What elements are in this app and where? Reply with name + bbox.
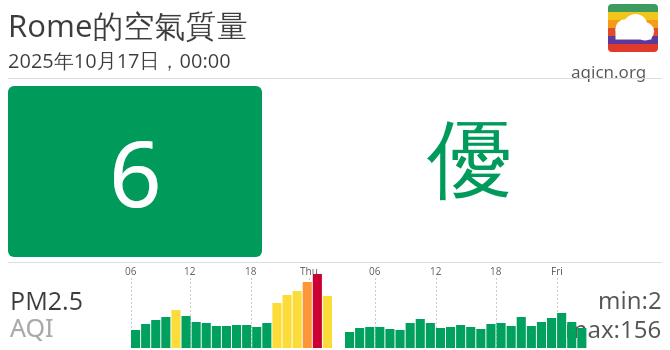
staticText: 12	[430, 264, 442, 278]
button[interactable]: 6	[8, 86, 262, 257]
staticText: 12	[184, 264, 196, 278]
staticText: Fri	[551, 264, 563, 278]
staticText: AQI	[10, 310, 54, 344]
staticText: 2025年10月17日，00:00	[8, 47, 231, 74]
staticText: Thu	[300, 264, 318, 278]
staticText: 18	[245, 264, 257, 278]
staticText: 06	[369, 264, 381, 278]
staticText: Rome的空氣質量	[8, 4, 248, 46]
staticText: max:156	[565, 312, 662, 340]
staticText: min:2	[598, 283, 662, 311]
button[interactable]: aqicn.org logo	[608, 4, 658, 52]
staticText: PM2.5	[10, 283, 84, 317]
staticText: 6	[109, 109, 162, 234]
staticText: 06	[125, 264, 137, 278]
staticText: 18	[490, 264, 502, 278]
staticText: 優	[427, 106, 513, 214]
staticText: aqicn.org	[571, 60, 647, 83]
